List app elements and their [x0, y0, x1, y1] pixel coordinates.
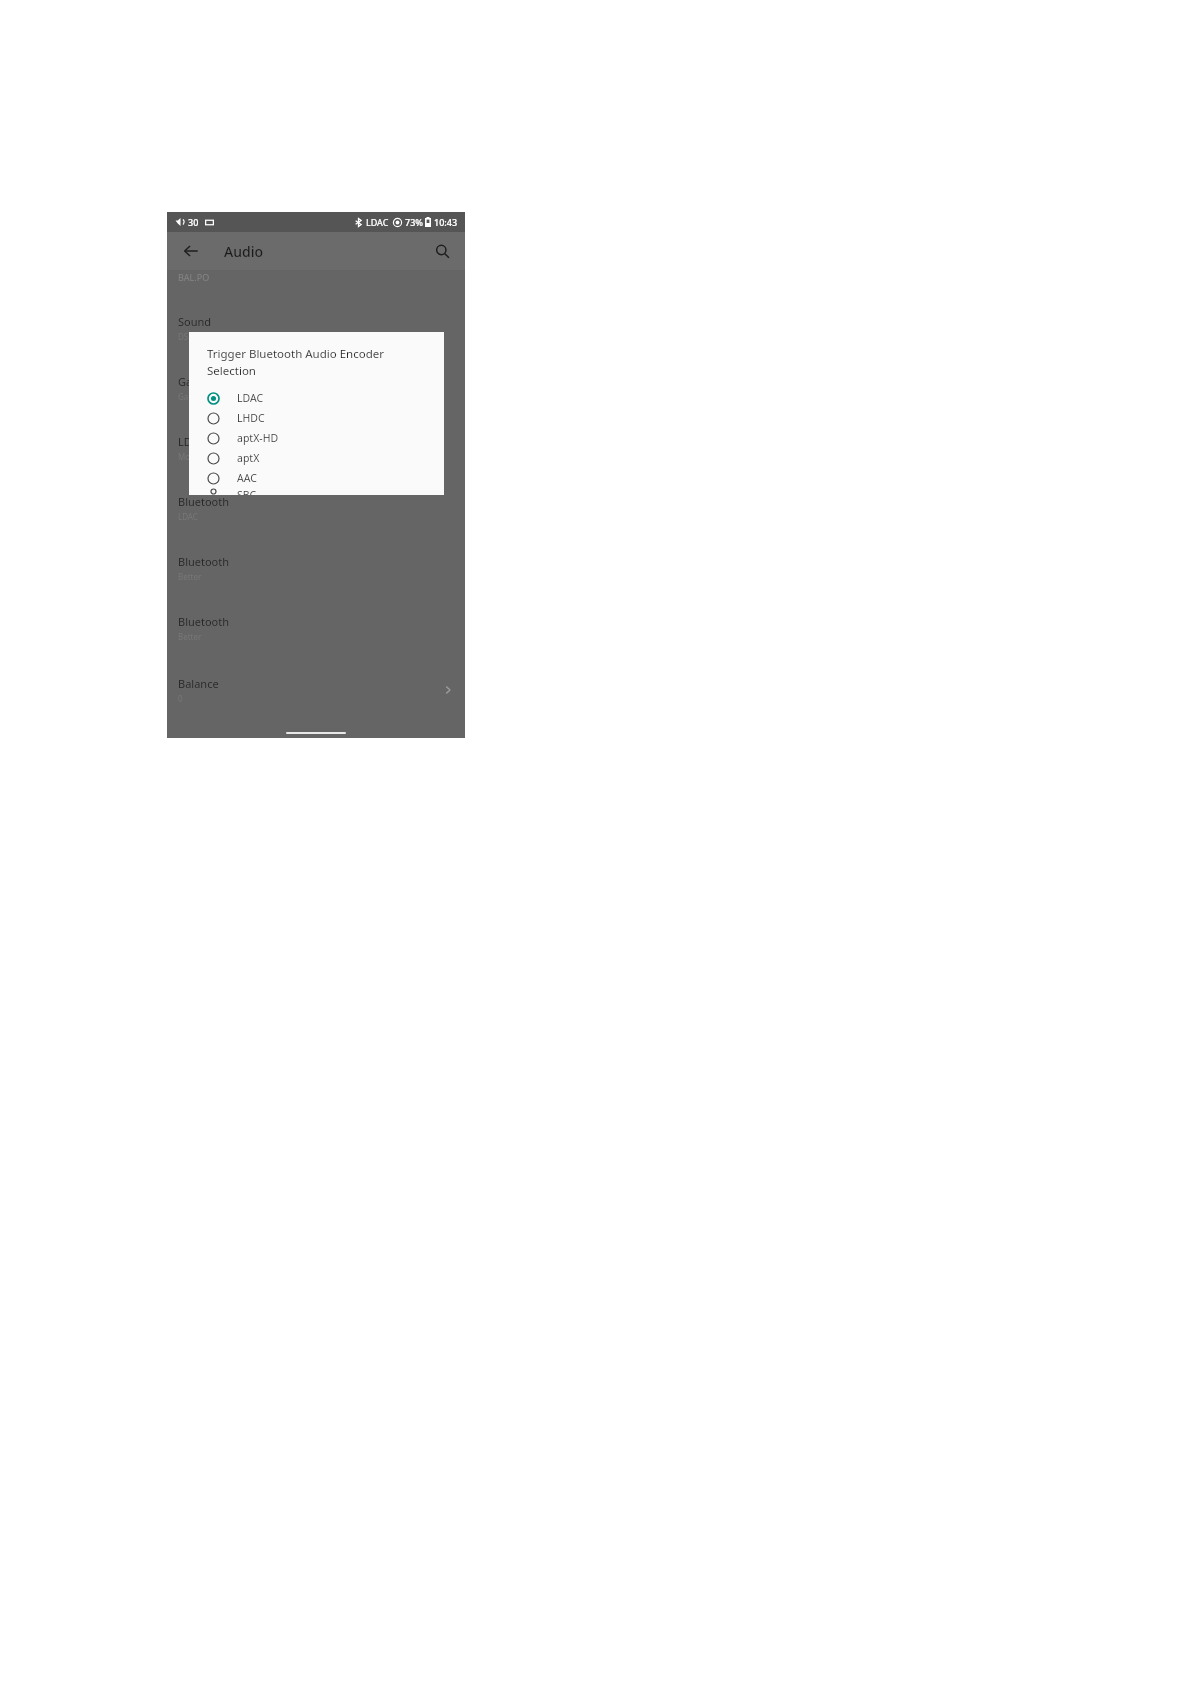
button[interactable]: aptX	[189, 448, 444, 468]
staticText: Balance	[178, 676, 219, 691]
staticText: Gapless	[178, 391, 208, 402]
button[interactable]: aptX-HD	[189, 428, 444, 448]
button[interactable]: AAC	[189, 468, 444, 488]
staticText: Bluetooth	[178, 494, 230, 509]
button[interactable]: Bluetooth	[178, 494, 476, 522]
staticText: DSEE	[178, 331, 198, 342]
button[interactable]: SBC	[189, 488, 444, 495]
staticText: LDAC	[366, 216, 389, 228]
staticText: LDAC	[178, 434, 206, 449]
button[interactable]: Search	[428, 237, 456, 265]
staticText: BAL.PO	[178, 271, 210, 283]
button[interactable]: Back	[177, 237, 205, 265]
staticText: Audio	[224, 242, 263, 261]
button[interactable]: Bluetooth	[178, 554, 476, 582]
staticText: Better	[178, 631, 202, 642]
staticText: 30	[188, 216, 199, 228]
staticText: Bluetooth	[178, 554, 230, 569]
staticText: Better	[178, 571, 202, 582]
staticText: Bluetooth	[178, 614, 230, 629]
staticText: 10:43	[434, 216, 458, 228]
staticText: LHDC	[237, 411, 265, 425]
staticText: Sound	[178, 314, 212, 329]
staticText: aptX-HD	[237, 431, 279, 445]
staticText: aptX	[237, 451, 260, 465]
staticText: More	[178, 451, 198, 462]
button[interactable]: LHDC	[189, 408, 444, 428]
staticText: LDAC	[178, 511, 198, 522]
staticText: 73%	[405, 216, 423, 228]
button[interactable]: LDAC	[189, 388, 444, 408]
staticText: AAC	[237, 471, 257, 485]
button[interactable]: LDAC	[178, 434, 476, 462]
staticText: Trigger Bluetooth Audio Encoder Selectio…	[207, 346, 384, 378]
button[interactable]: Gapless	[178, 374, 476, 402]
staticText: LDAC	[237, 391, 264, 405]
staticText: SBC	[237, 488, 257, 495]
staticText: 0	[178, 693, 183, 704]
button[interactable]: Bluetooth	[178, 614, 476, 642]
staticText: Gapless	[178, 374, 219, 389]
button[interactable]: Balance	[167, 666, 465, 714]
button[interactable]: Sound	[178, 314, 476, 342]
